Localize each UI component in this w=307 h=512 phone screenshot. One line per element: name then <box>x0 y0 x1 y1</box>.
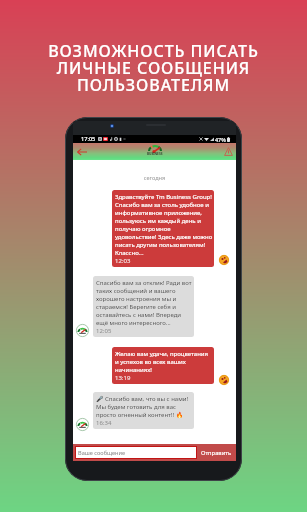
button[interactable]: Спасибо вам за отклик! Ради вот таких со… <box>93 276 194 337</box>
staticText: ВОЗМОЖНОСТЬ ПИСАТЬ ЛИЧНЫЕ СООБЩЕНИЯ ПОЛЬ… <box>0 40 307 96</box>
staticText: сегодня <box>73 174 236 182</box>
button[interactable]: Желаю вам удачи, процветания и успехов в… <box>112 347 214 384</box>
staticText: Спасибо вам за отклик! Ради вот таких со… <box>96 279 192 327</box>
staticText: Отправить <box>201 449 232 457</box>
staticText: 13:19 <box>115 374 131 382</box>
staticText: 47% <box>215 136 226 143</box>
button[interactable]: Back <box>73 143 91 160</box>
staticText: 16:34 <box>96 419 112 427</box>
staticText: 🎤 Спасибо вам, что вы с нами! Мы будем г… <box>96 395 189 419</box>
staticText: Ваше сообщение <box>78 449 126 457</box>
button[interactable]: Здравствуйте Tm Business Group! Спасибо … <box>112 190 214 267</box>
button[interactable]: Report a problem <box>220 143 236 160</box>
staticText: Желаю вам удачи, процветания и успехов в… <box>115 350 209 374</box>
button[interactable]: 🎤 Спасибо вам, что вы с нами! Мы будем г… <box>93 392 194 429</box>
button[interactable]: Отправить <box>197 444 235 461</box>
staticText: BUSINESS <box>147 152 163 156</box>
staticText: 12:03 <box>115 257 131 265</box>
staticText: 17:05 <box>81 135 96 143</box>
staticText: 12:05 <box>96 327 112 335</box>
button[interactable]: Ваше сообщение <box>76 447 196 458</box>
staticText: Здравствуйте Tm Business Group! Спасибо … <box>115 193 213 257</box>
